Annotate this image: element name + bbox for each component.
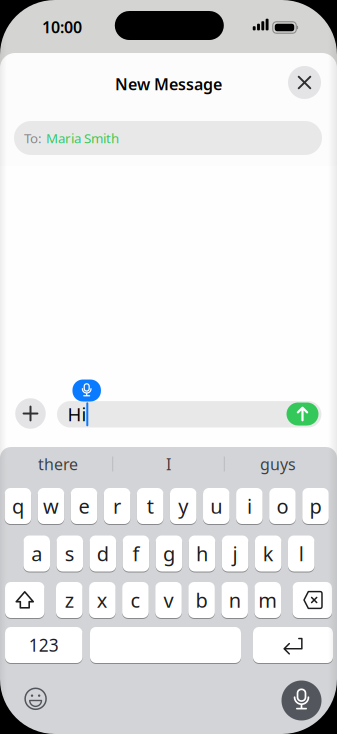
staticText: b <box>196 587 208 613</box>
button[interactable]: c <box>122 581 149 619</box>
staticText: j <box>233 540 238 567</box>
staticText: To: <box>24 129 42 147</box>
button[interactable]: Return <box>253 626 333 664</box>
button[interactable]: f <box>123 534 149 572</box>
staticText: u <box>210 493 222 519</box>
staticText: g <box>163 540 175 567</box>
staticText: x <box>97 587 108 613</box>
button[interactable]: d <box>89 534 116 572</box>
button[interactable]: y <box>170 487 196 525</box>
button[interactable]: t <box>137 487 163 525</box>
button[interactable]: g <box>156 534 182 572</box>
button[interactable]: k <box>255 534 281 572</box>
staticText: t <box>147 493 154 519</box>
button[interactable]: Delete <box>292 581 332 619</box>
staticText: r <box>113 493 121 519</box>
button[interactable]: o <box>269 487 296 525</box>
button[interactable]: e <box>71 487 97 525</box>
button[interactable]: guys <box>228 449 328 479</box>
button[interactable]: m <box>254 581 281 619</box>
staticText: guys <box>260 453 296 475</box>
button[interactable]: Numbers <box>5 626 82 664</box>
button[interactable]: u <box>203 487 230 525</box>
button[interactable]: Add attachment <box>15 398 46 429</box>
staticText: I <box>166 453 171 475</box>
button[interactable]: there <box>8 449 108 479</box>
staticText: e <box>78 493 89 519</box>
button[interactable]: b <box>188 581 215 619</box>
staticText: i <box>247 493 252 519</box>
staticText: l <box>299 540 304 567</box>
button[interactable]: Close <box>288 66 321 99</box>
button[interactable]: s <box>56 534 83 572</box>
staticText: p <box>309 493 321 519</box>
button[interactable]: p <box>302 487 329 525</box>
button[interactable]: n <box>221 581 248 619</box>
staticText: 123 <box>29 633 59 656</box>
button[interactable]: i <box>236 487 263 525</box>
staticText: q <box>12 493 24 519</box>
staticText: y <box>178 493 188 519</box>
staticText: d <box>97 540 109 567</box>
staticText: f <box>132 540 139 567</box>
staticText: k <box>263 540 274 567</box>
button[interactable]: h <box>189 534 215 572</box>
button[interactable]: To: <box>14 121 322 155</box>
staticText: there <box>38 453 78 475</box>
button[interactable]: Send <box>286 402 318 425</box>
button[interactable]: j <box>222 534 248 572</box>
staticText: Maria Smith <box>46 129 119 147</box>
staticText: n <box>229 587 241 613</box>
button[interactable]: r <box>104 487 130 525</box>
staticText: o <box>276 493 288 519</box>
button[interactable]: w <box>38 487 64 525</box>
button[interactable]: l <box>288 534 315 572</box>
staticText: m <box>258 587 277 613</box>
staticText: v <box>163 587 173 613</box>
button[interactable]: x <box>89 581 116 619</box>
staticText: Hi <box>67 402 86 426</box>
button[interactable]: Shift <box>5 581 44 619</box>
staticText: 10:00 <box>42 16 82 38</box>
staticText: a <box>31 540 42 567</box>
button[interactable]: a <box>23 534 50 572</box>
button[interactable]: z <box>56 581 83 619</box>
button[interactable]: v <box>155 581 182 619</box>
button[interactable]: I <box>118 449 218 479</box>
staticText: s <box>65 540 75 567</box>
button[interactable]: Dictate <box>281 680 321 720</box>
button[interactable]: Space <box>90 626 241 664</box>
staticText: z <box>65 587 74 613</box>
staticText: h <box>196 540 208 567</box>
button[interactable]: Dictation <box>72 379 101 401</box>
button[interactable]: Emoji <box>24 687 48 711</box>
button[interactable]: q <box>5 487 31 525</box>
button[interactable]: Message <box>57 401 321 428</box>
staticText: New Message <box>115 73 222 95</box>
staticText: w <box>43 493 59 519</box>
staticText: c <box>130 587 140 613</box>
